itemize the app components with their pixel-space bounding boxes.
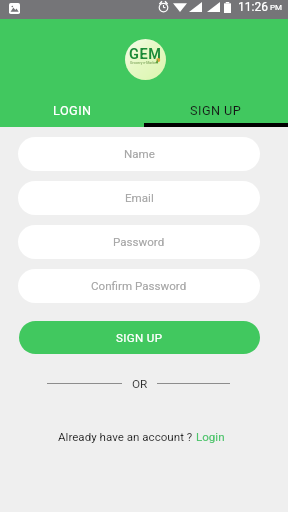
button[interactable]: Email [18, 181, 260, 215]
staticText: OR [132, 377, 148, 391]
button[interactable]: Name [18, 137, 260, 171]
staticText: 11:26 [238, 0, 268, 14]
staticText: SIGN UP [190, 103, 242, 118]
button[interactable]: SIGN UP [19, 321, 260, 354]
staticText: Email [125, 191, 154, 205]
staticText: Already have an account ? [58, 430, 196, 444]
staticText: GEM [129, 46, 162, 63]
staticText: PM [270, 3, 283, 12]
staticText: Password [113, 235, 165, 249]
button[interactable]: Login [196, 430, 225, 444]
staticText: SIGN UP [116, 331, 163, 345]
staticText: Confirm Password [91, 279, 187, 293]
staticText: Grocery e-Market [130, 61, 158, 65]
staticText: Login [196, 430, 225, 444]
button[interactable]: Password [18, 225, 260, 259]
button[interactable]: LOGIN [0, 93, 144, 127]
staticText: LOGIN [53, 103, 92, 118]
staticText: Name [124, 147, 155, 161]
button[interactable]: SIGN UP [144, 93, 288, 127]
button[interactable]: Confirm Password [18, 269, 260, 303]
